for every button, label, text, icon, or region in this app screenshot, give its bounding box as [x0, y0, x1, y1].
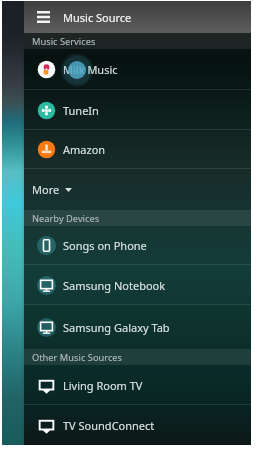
button[interactable]: TV SoundConnect: [24, 405, 251, 445]
staticText: TV SoundConnect: [63, 418, 155, 433]
button[interactable]: Samsung Notebook: [24, 265, 251, 305]
staticText: Samsung Galaxy Tab: [63, 320, 170, 335]
button[interactable]: TuneIn: [24, 90, 251, 130]
staticText: Songs on Phone: [63, 238, 147, 253]
staticText: More: [32, 182, 60, 197]
staticText: Music Source: [63, 10, 132, 25]
staticText: Living Room TV: [63, 378, 143, 393]
staticText: Milk Music: [63, 62, 118, 77]
staticText: Nearby Devices: [32, 212, 100, 225]
staticText: Music Services: [32, 35, 96, 48]
button[interactable]: More: [24, 169, 251, 210]
button[interactable]: Living Room TV: [24, 365, 251, 405]
button[interactable]: Songs on Phone: [24, 226, 251, 265]
button[interactable]: Amazon: [24, 130, 251, 169]
staticText: Samsung Notebook: [63, 278, 166, 293]
staticText: Amazon: [63, 142, 106, 157]
button[interactable]: Open navigation drawer: [32, 6, 54, 28]
staticText: Other Music Sources: [32, 351, 123, 364]
staticText: TuneIn: [63, 103, 99, 118]
button[interactable]: Samsung Galaxy Tab: [24, 305, 251, 349]
button[interactable]: Milk Music: [24, 49, 251, 90]
